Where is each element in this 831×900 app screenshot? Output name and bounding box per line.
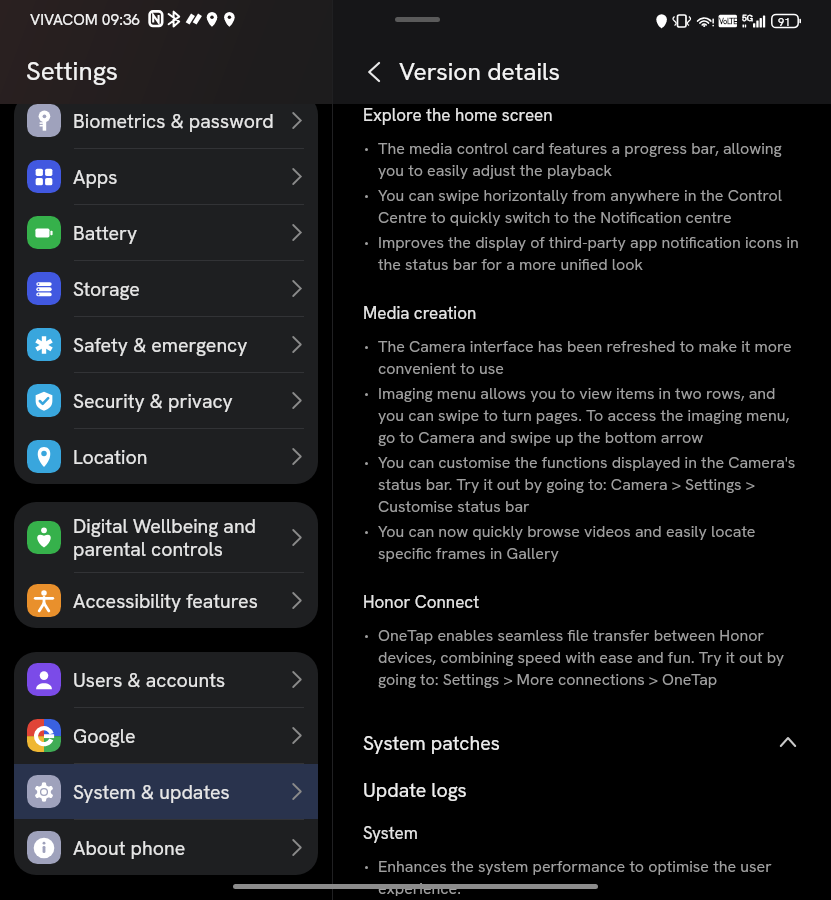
staticText: Battery: [73, 220, 292, 245]
staticText: 91: [778, 15, 791, 29]
staticText: Biometrics & password: [73, 108, 292, 133]
staticText: The media control card features a progre…: [378, 138, 803, 181]
button[interactable]: Location: [14, 429, 318, 484]
staticText: System patches: [363, 730, 787, 755]
staticText: VoLTE: [719, 16, 738, 26]
button[interactable]: Accessibility features: [14, 573, 318, 628]
staticText: Apps: [73, 164, 292, 189]
staticText: The Camera interface has been refreshed …: [378, 336, 803, 379]
staticText: Settings: [26, 54, 118, 88]
button[interactable]: Google: [14, 708, 318, 763]
staticText: Location: [73, 444, 292, 469]
button[interactable]: Biometrics & password: [14, 93, 318, 148]
staticText: Media creation: [363, 302, 477, 324]
staticText: 5G: [742, 12, 753, 23]
staticText: Improves the display of third-party app …: [378, 232, 803, 275]
staticText: Storage: [73, 276, 292, 301]
staticText: Version details: [399, 55, 560, 87]
button[interactable]: About phone: [14, 820, 318, 875]
button[interactable]: Storage: [14, 261, 318, 316]
staticText: Accessibility features: [73, 588, 292, 613]
staticText: Security & privacy: [73, 388, 292, 413]
staticText: Enhances the system performance to optim…: [378, 856, 803, 896]
staticText: System: [363, 822, 418, 844]
staticText: You can customise the functions displaye…: [378, 452, 803, 517]
staticText: Explore the home screen: [363, 104, 553, 126]
staticText: Google: [73, 723, 292, 748]
button[interactable]: System patches: [363, 725, 803, 759]
staticText: You can now quickly browse videos and ea…: [378, 521, 803, 564]
staticText: Imaging menu allows you to view items in…: [378, 383, 803, 448]
button[interactable]: Security & privacy: [14, 373, 318, 428]
button[interactable]: Back: [356, 56, 392, 88]
button[interactable]: Users & accounts: [14, 652, 318, 707]
staticText: VIVACOM 09:36: [30, 9, 141, 29]
staticText: Users & accounts: [73, 667, 292, 692]
staticText: Honor Connect: [363, 591, 480, 613]
staticText: System & updates: [73, 779, 292, 804]
button[interactable]: Digital Wellbeing and parental controls: [14, 502, 318, 572]
staticText: Safety & emergency: [73, 332, 292, 357]
button[interactable]: System & updates: [14, 764, 318, 819]
staticText: About phone: [73, 835, 292, 860]
button[interactable]: Apps: [14, 149, 318, 204]
staticText: OneTap enables seamless file transfer be…: [378, 625, 803, 690]
staticText: You can swipe horizontally from anywhere…: [378, 185, 803, 228]
button[interactable]: Safety & emergency: [14, 317, 318, 372]
staticText: Digital Wellbeing and parental controls: [73, 513, 292, 562]
button[interactable]: Battery: [14, 205, 318, 260]
staticText: Update logs: [363, 777, 467, 802]
